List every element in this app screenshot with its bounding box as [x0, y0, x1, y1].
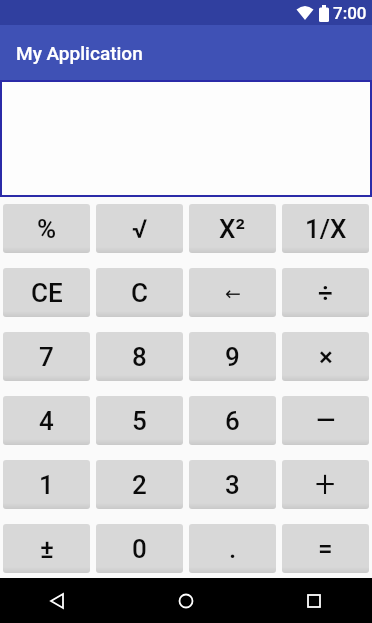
staticText: 1: [39, 470, 54, 500]
button[interactable]: 3: [189, 460, 276, 509]
button[interactable]: ±: [3, 524, 90, 573]
button[interactable]: [0, 578, 124, 623]
button[interactable]: 7: [3, 332, 90, 381]
staticText: ÷: [318, 278, 333, 308]
button[interactable]: ÷: [282, 268, 369, 317]
button[interactable]: [0, 80, 372, 197]
button[interactable]: 8: [96, 332, 183, 381]
button[interactable]: [124, 578, 248, 623]
staticText: 7: [39, 342, 54, 372]
button[interactable]: —: [282, 396, 369, 445]
button[interactable]: X²: [189, 204, 276, 253]
staticText: 2: [132, 470, 147, 500]
button[interactable]: CE: [3, 268, 90, 317]
staticText: My Application: [16, 42, 143, 64]
staticText: .: [229, 534, 237, 564]
button[interactable]: 1/X: [282, 204, 369, 253]
staticText: %: [37, 214, 57, 244]
button[interactable]: 9: [189, 332, 276, 381]
button[interactable]: +: [282, 460, 369, 509]
staticText: 3: [225, 470, 240, 500]
button[interactable]: .: [189, 524, 276, 573]
staticText: X²: [219, 214, 246, 244]
staticText: 7:00: [333, 3, 367, 23]
staticText: 9: [225, 342, 240, 372]
button[interactable]: ←: [189, 268, 276, 317]
staticText: 6: [225, 406, 240, 436]
button[interactable]: √: [96, 204, 183, 253]
button[interactable]: ×: [282, 332, 369, 381]
staticText: ←: [225, 282, 241, 304]
button[interactable]: 5: [96, 396, 183, 445]
button[interactable]: 4: [3, 396, 90, 445]
button[interactable]: =: [282, 524, 369, 573]
staticText: —: [316, 406, 336, 435]
staticText: =: [318, 534, 333, 564]
button[interactable]: %: [3, 204, 90, 253]
button[interactable]: 0: [96, 524, 183, 573]
staticText: ×: [319, 342, 333, 372]
staticText: 4: [39, 406, 54, 436]
button[interactable]: [248, 578, 372, 623]
button[interactable]: C: [96, 268, 183, 317]
staticText: 8: [132, 342, 147, 372]
staticText: ±: [40, 534, 54, 564]
staticText: √: [132, 214, 148, 244]
button[interactable]: 2: [96, 460, 183, 509]
staticText: 0: [132, 534, 147, 564]
staticText: 1/X: [305, 214, 347, 244]
staticText: +: [315, 464, 336, 506]
staticText: 5: [132, 406, 147, 436]
staticText: CE: [31, 278, 63, 308]
staticText: C: [131, 278, 148, 308]
button[interactable]: 6: [189, 396, 276, 445]
button[interactable]: 1: [3, 460, 90, 509]
